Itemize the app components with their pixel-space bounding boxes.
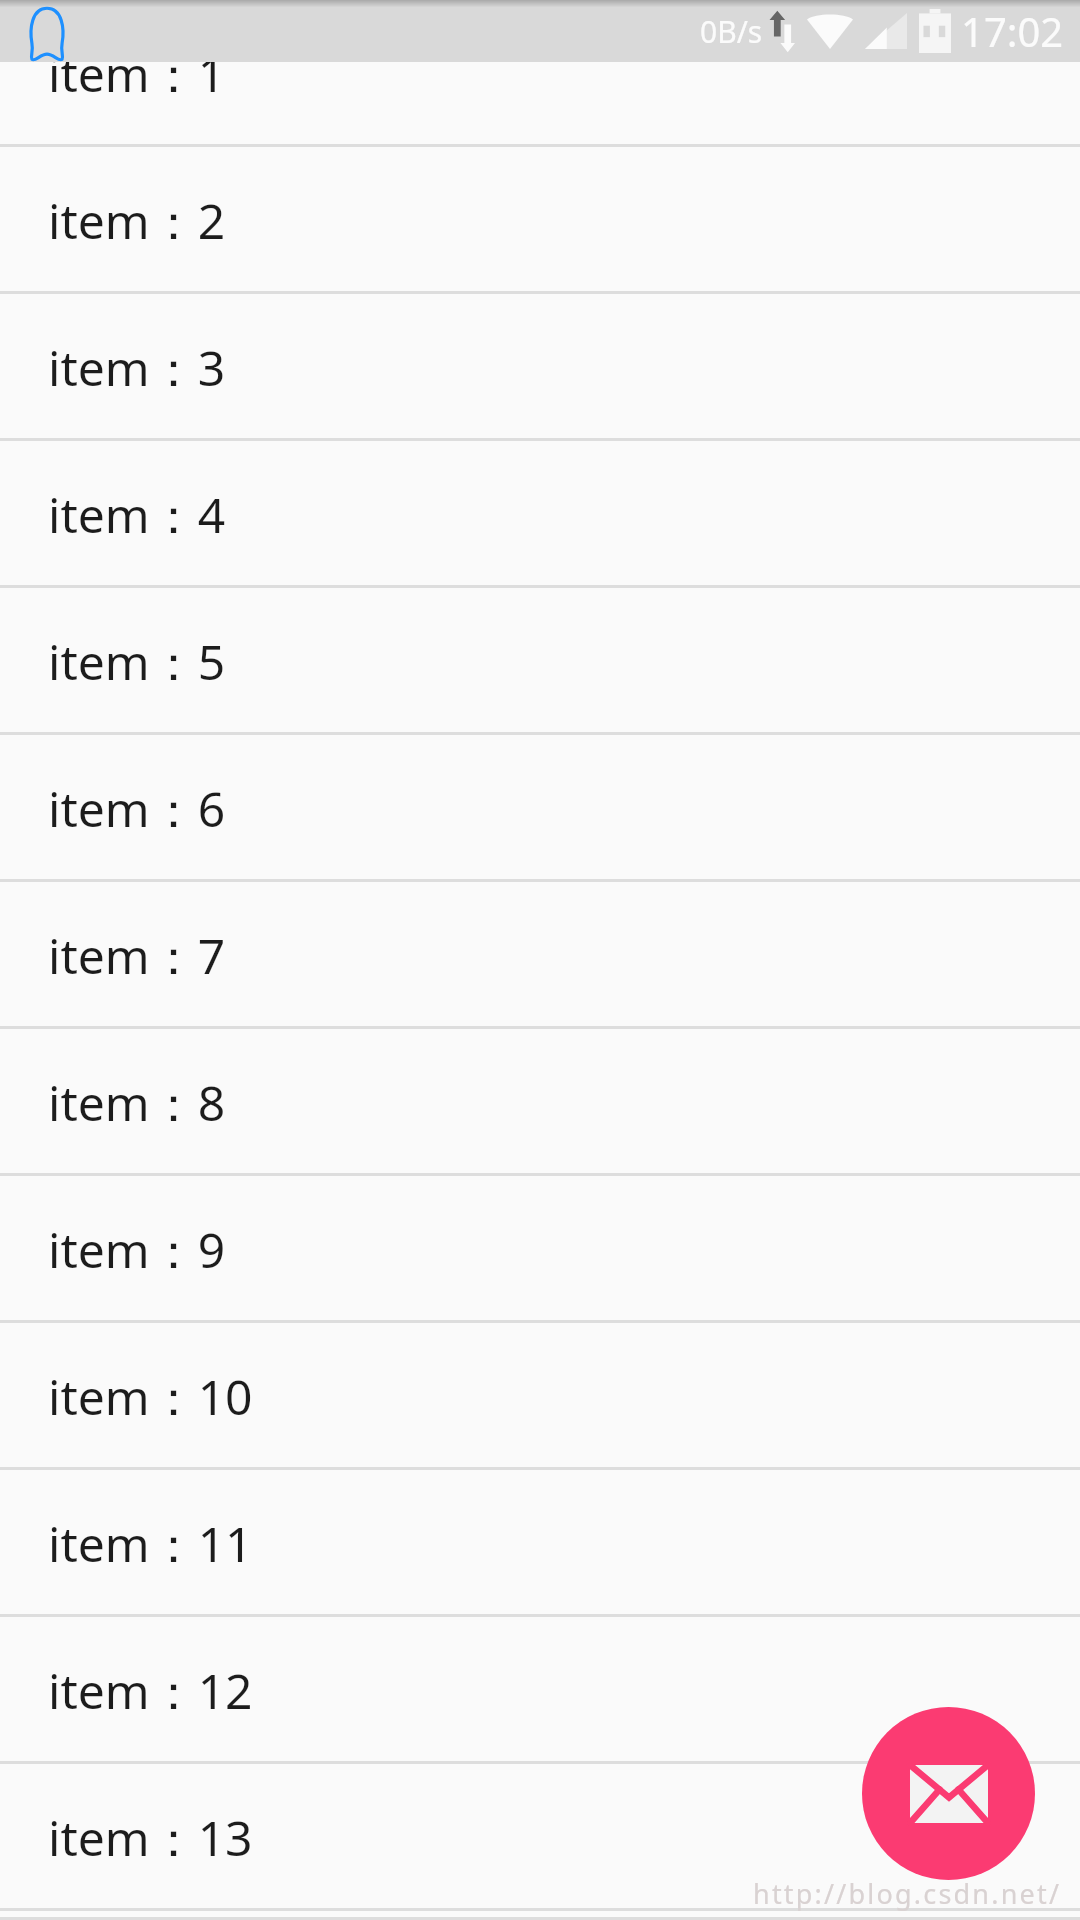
staticText: http://blog.csdn.net/	[753, 1875, 1062, 1912]
button[interactable]: item：6	[0, 735, 1080, 882]
staticText: 0B/s	[700, 11, 763, 52]
button[interactable]: item：4	[0, 441, 1080, 588]
button[interactable]: item：2	[0, 147, 1080, 294]
button[interactable]: Compose message	[862, 1707, 1035, 1880]
button[interactable]: item：7	[0, 882, 1080, 1029]
staticText: item：6	[48, 776, 226, 842]
staticText: item：5	[48, 629, 226, 695]
staticText: item：12	[48, 1658, 253, 1724]
staticText: item：14	[48, 1911, 253, 1920]
staticText: item：13	[48, 1805, 253, 1871]
staticText: item：9	[48, 1217, 226, 1283]
staticText: item：10	[48, 1364, 253, 1430]
staticText: 17:02	[961, 4, 1064, 58]
button[interactable]: item：1	[0, 0, 1080, 147]
staticText: item：8	[48, 1070, 226, 1136]
button[interactable]: item：14	[0, 1911, 1080, 1920]
button[interactable]: item：10	[0, 1323, 1080, 1470]
staticText: item：7	[48, 923, 226, 989]
button[interactable]: item：11	[0, 1470, 1080, 1617]
staticText: item：3	[48, 335, 226, 401]
staticText: item：11	[48, 1511, 253, 1577]
staticText: item：1	[48, 41, 226, 107]
button[interactable]: item：9	[0, 1176, 1080, 1323]
button[interactable]: item：3	[0, 294, 1080, 441]
button[interactable]: item：5	[0, 588, 1080, 735]
button[interactable]: item：8	[0, 1029, 1080, 1176]
button[interactable]: item：13	[0, 1764, 1080, 1911]
button[interactable]: item：12	[0, 1617, 1080, 1764]
staticText: item：2	[48, 188, 226, 254]
staticText: item：4	[48, 482, 226, 548]
